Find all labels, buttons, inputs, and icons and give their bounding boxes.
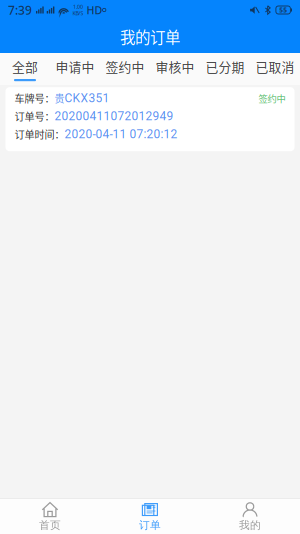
staticText: HD (86, 3, 102, 17)
button[interactable]: 全部 (0, 53, 50, 85)
button[interactable]: 已取消 (250, 53, 300, 85)
staticText: CKX351 (64, 91, 109, 105)
button[interactable]: 签约中 (100, 53, 150, 85)
staticText: 7:39 (8, 2, 32, 18)
button[interactable]: 车牌号： (5, 87, 294, 151)
staticText: 签约中 (258, 91, 285, 105)
button[interactable]: 审核中 (150, 53, 200, 85)
staticText: 订单 (139, 519, 161, 532)
button[interactable]: 我的 (200, 496, 300, 534)
staticText: 我的 (239, 519, 261, 532)
staticText: 贵 (54, 91, 64, 106)
button[interactable]: 已分期 (200, 53, 250, 85)
button[interactable]: 首页 (0, 496, 100, 534)
staticText: 我的订单 (120, 25, 180, 48)
button[interactable]: 申请中 (50, 53, 100, 85)
staticText: 已分期 (205, 57, 244, 76)
staticText: 2020-04-11 07:20:12 (64, 127, 177, 141)
staticText: 55 (279, 6, 287, 14)
staticText: 车牌号： (14, 91, 54, 106)
button[interactable]: 订单 (100, 496, 200, 534)
staticText: 全部 (12, 57, 38, 76)
staticText: 签约中 (105, 57, 144, 76)
staticText: 审核中 (155, 57, 194, 76)
staticText: 1.00 (73, 3, 83, 10)
staticText: 首页 (39, 519, 61, 532)
staticText: 订单号： (14, 109, 54, 124)
staticText: 申请中 (55, 57, 94, 76)
staticText: 订单时间： (14, 127, 64, 142)
staticText: KB/S (72, 10, 83, 17)
staticText: 20200411072012949 (54, 109, 173, 123)
staticText: 已取消 (255, 57, 294, 76)
